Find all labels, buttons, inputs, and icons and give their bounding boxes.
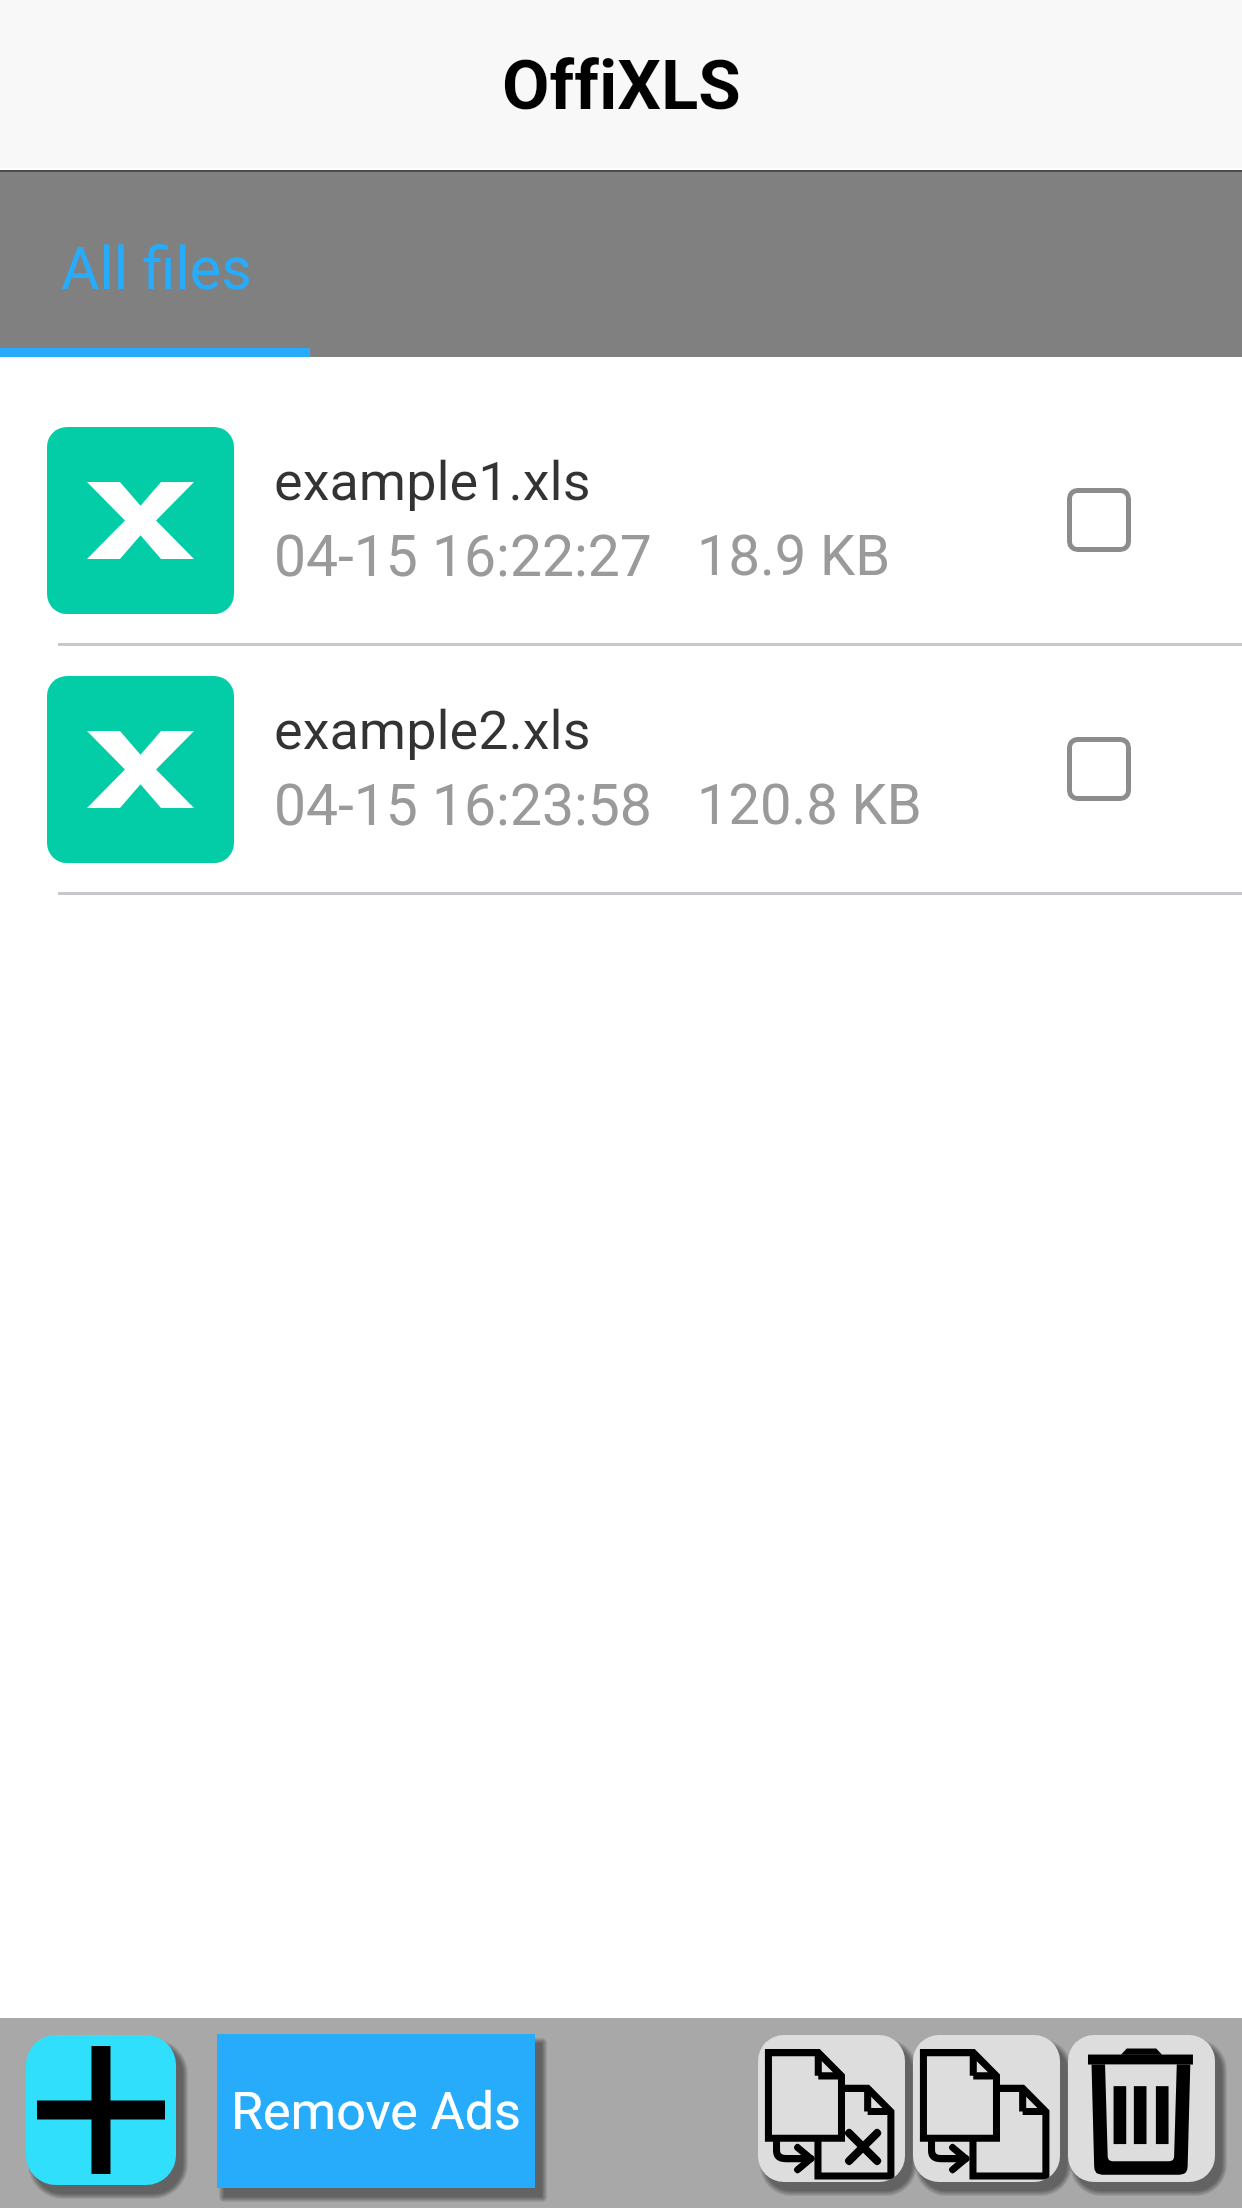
staticText: Remove Ads (231, 2081, 521, 2142)
button[interactable]: example1.xls (0, 397, 1242, 646)
button[interactable]: Move (758, 2035, 905, 2182)
staticText: 120.8 KB (697, 772, 922, 838)
staticText: 04-15 16:22:27 (274, 523, 652, 590)
staticText: example2.xls (274, 699, 591, 762)
button[interactable]: Delete (1068, 2035, 1215, 2182)
button[interactable]: Remove Ads (217, 2034, 535, 2188)
button[interactable]: Select example1.xls (1025, 446, 1173, 594)
staticText: All files (61, 234, 252, 303)
button[interactable]: example2.xls (0, 646, 1242, 895)
button[interactable]: Copy (913, 2035, 1060, 2182)
button[interactable]: New file (26, 2035, 176, 2185)
staticText: 18.9 KB (697, 523, 891, 589)
staticText: example1.xls (274, 450, 591, 513)
button[interactable]: All files (0, 172, 310, 357)
button[interactable]: Select example2.xls (1025, 695, 1173, 843)
staticText: 04-15 16:23:58 (274, 772, 652, 839)
staticText: OffiXLS (502, 45, 741, 126)
